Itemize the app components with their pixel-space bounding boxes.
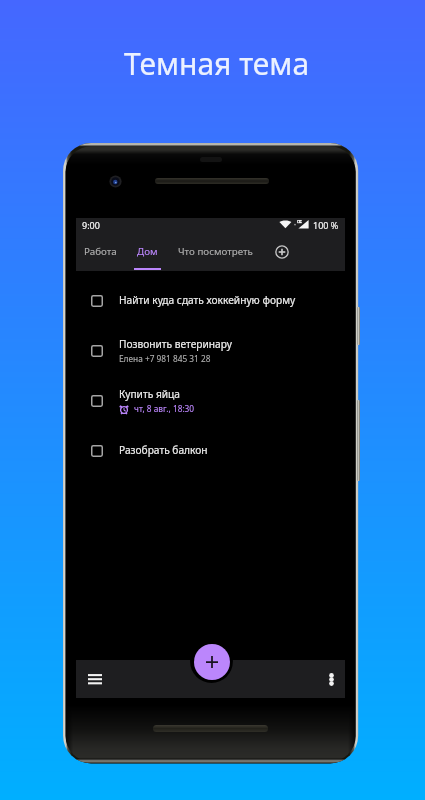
staticText: 9:00 bbox=[82, 219, 100, 231]
staticText: Разобрать балкон bbox=[119, 443, 208, 457]
button[interactable]: Add list bbox=[267, 237, 297, 267]
button[interactable]: Что посмотреть bbox=[172, 235, 259, 268]
staticText: Работа bbox=[84, 245, 117, 258]
button[interactable]: Menu bbox=[83, 667, 107, 691]
staticText: Найти куда сдать хоккейную форму bbox=[119, 293, 296, 307]
staticText: Темная тема bbox=[4, 43, 425, 84]
button[interactable]: More options bbox=[319, 667, 343, 691]
button[interactable]: Дом bbox=[131, 235, 164, 268]
staticText: Позвонить ветеринару bbox=[119, 337, 232, 351]
button[interactable]: Найти куда сдать хоккейную форму bbox=[76, 276, 345, 326]
button[interactable]: Купить яйца bbox=[76, 376, 345, 426]
staticText: чт, 8 авг., 18:30 bbox=[134, 403, 195, 414]
staticText: 100 % bbox=[313, 219, 339, 231]
button[interactable]: Разобрать балкон bbox=[76, 426, 345, 476]
staticText: Что посмотреть bbox=[178, 245, 253, 258]
staticText: Елена +7 981 845 31 28 bbox=[119, 353, 211, 364]
button[interactable]: Позвонить ветеринару bbox=[76, 326, 345, 376]
staticText: Купить яйца bbox=[119, 387, 180, 401]
button[interactable]: Add task bbox=[194, 644, 230, 680]
staticText: Дом bbox=[137, 245, 158, 258]
button[interactable]: Работа bbox=[78, 235, 123, 268]
